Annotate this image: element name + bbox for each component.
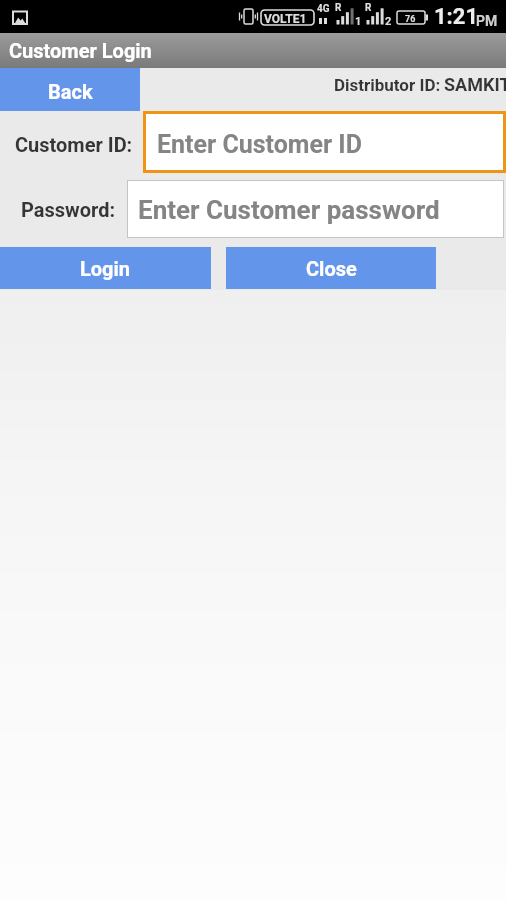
button[interactable]: Back [0,68,140,111]
other: Status icons [0,0,506,33]
staticText: Distributor ID: [334,75,441,95]
staticText: SAMKIT [444,74,506,95]
staticText: 1 [355,15,362,28]
button[interactable]: Login [0,247,211,289]
staticText: Login [80,257,131,280]
staticText: 1:21 [434,4,479,30]
staticText: Password: [21,198,116,221]
staticText: Back [48,80,93,103]
staticText: Enter Customer ID [157,130,362,159]
staticText: Close [306,257,357,280]
staticText: Customer Login [9,39,152,62]
button[interactable]: Enter Customer ID [143,111,506,173]
staticText: Enter Customer password [138,195,440,225]
staticText: Customer ID: [15,133,133,156]
staticText: 76 [405,14,416,25]
staticText: R [335,2,342,14]
button[interactable]: Close [226,247,436,289]
staticText: VOLTE1 [264,12,307,26]
button[interactable]: Enter Customer password [127,180,504,238]
staticText: 2 [385,15,392,28]
staticText: PM [476,13,498,29]
staticText: 4G [317,3,330,15]
staticText: R [365,2,372,14]
